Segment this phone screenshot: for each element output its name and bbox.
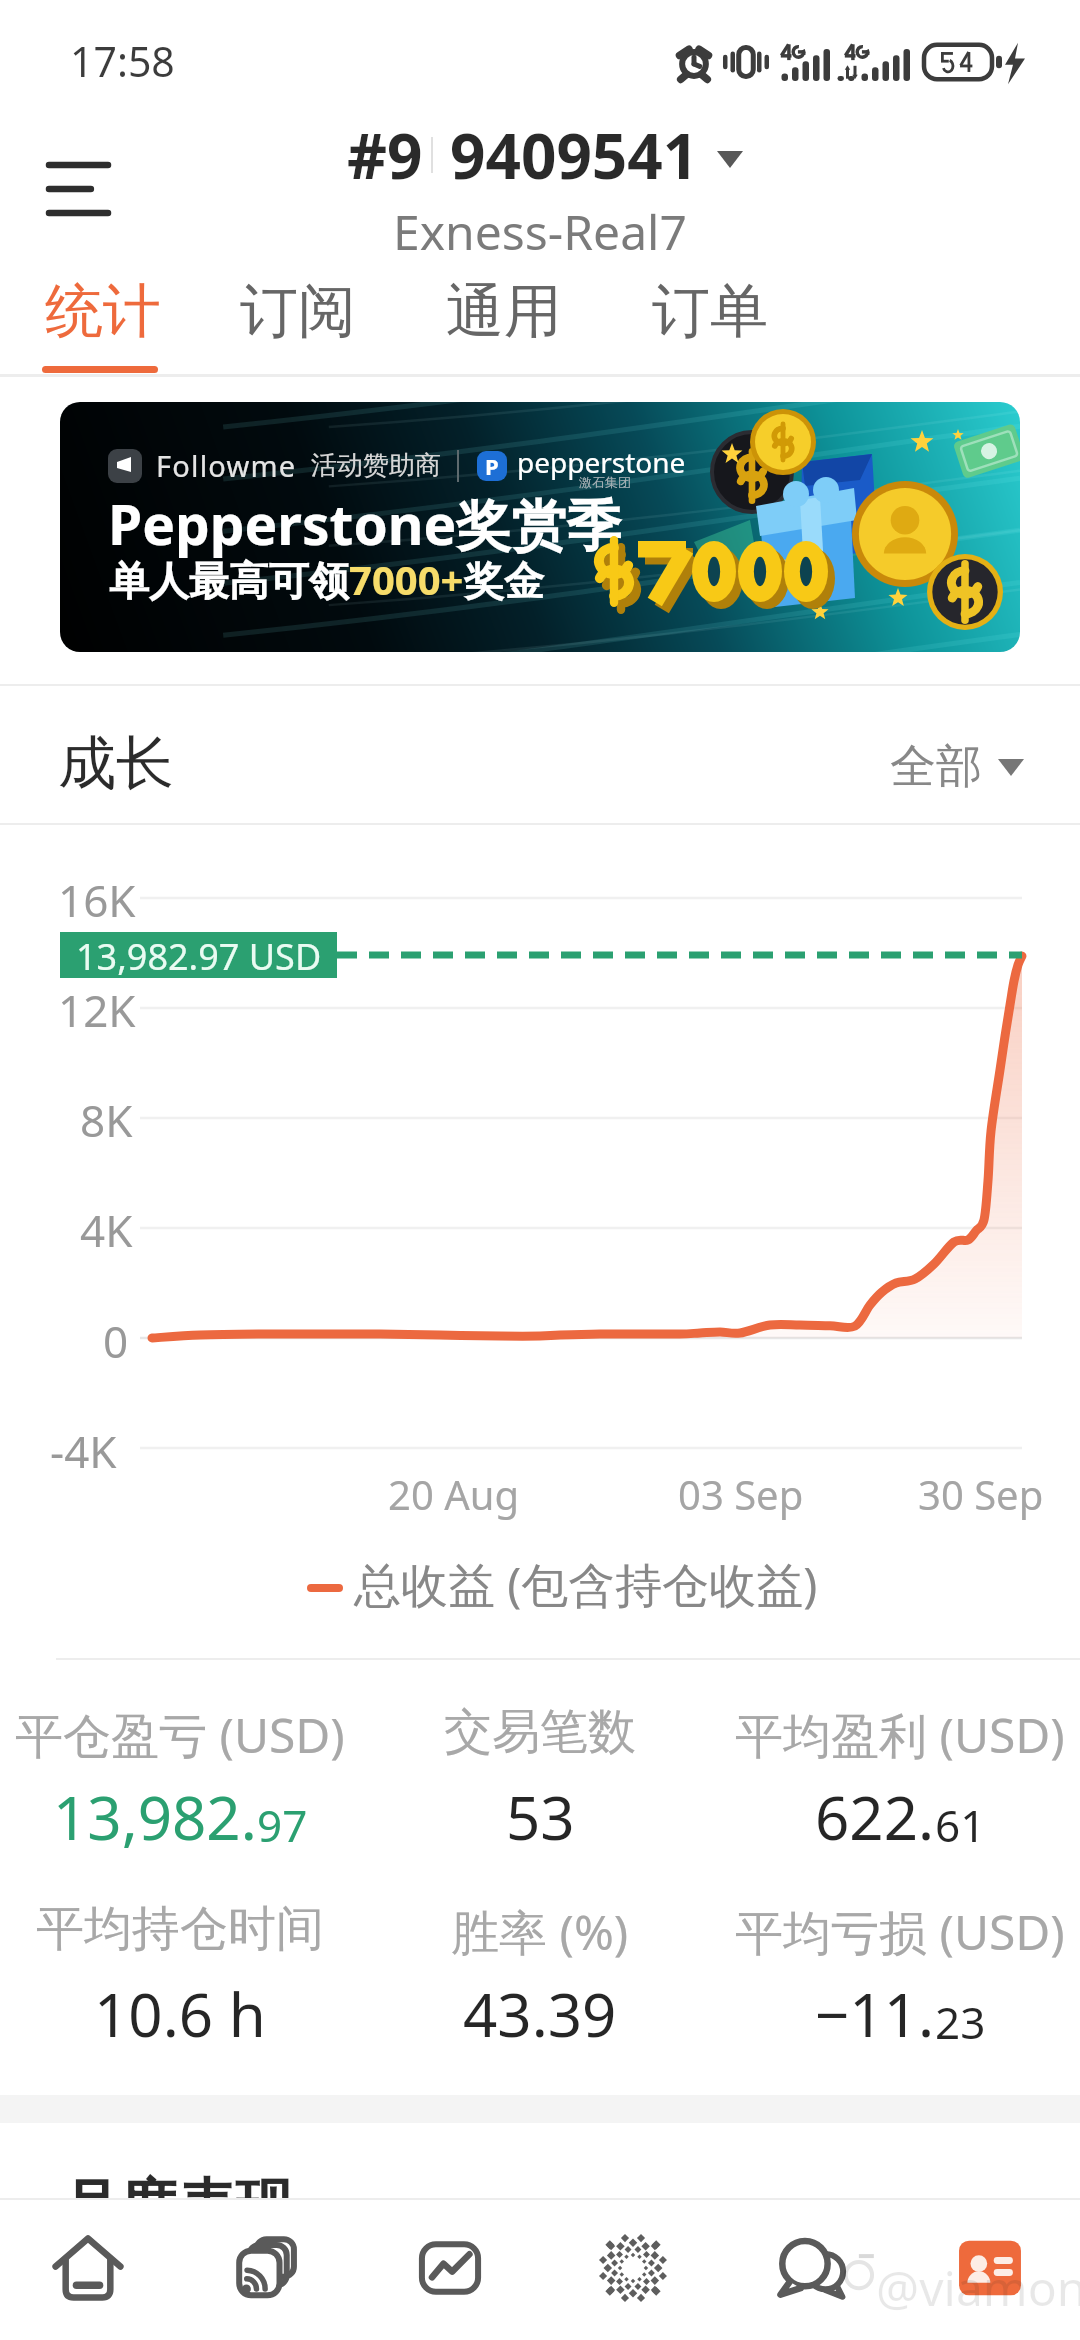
- staticText: 平仓盈亏 (USD): [15, 1702, 345, 1768]
- button[interactable]: Discover: [548, 2200, 718, 2340]
- staticText: 全部: [890, 738, 982, 796]
- button[interactable]: 统计: [37, 272, 169, 374]
- staticText: 97: [257, 1795, 308, 1855]
- button[interactable]: Analytics: [365, 2200, 535, 2340]
- staticText: 通用: [446, 275, 562, 348]
- button[interactable]: 订阅: [232, 272, 364, 374]
- staticText: 激石集团: [579, 474, 631, 490]
- staticText: 53: [506, 1776, 575, 1858]
- staticText: 30 Sep: [918, 1467, 1044, 1521]
- staticText: 奖金: [464, 556, 544, 606]
- staticText: pepperstone: [517, 443, 686, 481]
- button[interactable]: 订单: [644, 272, 776, 374]
- button[interactable]: 通用: [438, 272, 570, 374]
- staticText: 平均盈利 (USD): [735, 1702, 1065, 1768]
- staticText: 8K: [80, 1090, 133, 1150]
- staticText: 订单: [652, 275, 768, 348]
- staticText: 活动赞助商: [311, 449, 441, 482]
- staticText: 12K: [58, 980, 136, 1040]
- staticText: 交易笔数: [444, 1702, 636, 1762]
- staticText: Pepperstone奖赏季: [108, 486, 622, 561]
- staticText: 7000+: [349, 552, 464, 606]
- staticText: P: [485, 451, 499, 481]
- staticText: 平均亏损 (USD): [735, 1899, 1065, 1965]
- button[interactable]: Followme: [60, 402, 1020, 652]
- button[interactable]: Profile: [905, 2200, 1075, 2340]
- staticText: 17:58: [70, 33, 175, 89]
- staticText: #9: [347, 113, 423, 197]
- staticText: 622.: [815, 1776, 935, 1858]
- staticText: 13,982.: [53, 1776, 257, 1858]
- staticText: @viamond: [876, 2255, 1080, 2320]
- button[interactable]: #9: [347, 113, 743, 197]
- staticText: -4K: [50, 1421, 117, 1481]
- staticText: 03 Sep: [678, 1467, 804, 1521]
- staticText: 4K: [80, 1200, 133, 1260]
- staticText: 9409541: [450, 113, 699, 197]
- staticText: 统计: [45, 275, 161, 348]
- staticText: 10.6 h: [94, 1973, 266, 2055]
- staticText: −11.: [815, 1973, 935, 2055]
- staticText: 16K: [58, 870, 136, 930]
- staticText: 成长: [58, 727, 174, 800]
- staticText: 23: [935, 1992, 986, 2052]
- staticText: Followme: [156, 446, 297, 485]
- staticText: Exness-Real7: [393, 199, 687, 264]
- staticText: 总收益 (包含持仓收益): [354, 1552, 818, 1616]
- staticText: 月度表现: [61, 2170, 293, 2243]
- staticText: 61: [935, 1795, 986, 1855]
- staticText: 胜率 (%): [451, 1899, 629, 1965]
- staticText: 20 Aug: [388, 1467, 520, 1521]
- button[interactable]: 全部: [890, 738, 1024, 796]
- staticText: 0: [103, 1311, 129, 1371]
- button[interactable]: Messages: [725, 2200, 895, 2340]
- staticText: 订阅: [240, 275, 356, 348]
- button[interactable]: Feed: [183, 2200, 353, 2340]
- button[interactable]: Menu: [19, 136, 138, 236]
- button[interactable]: Home: [3, 2200, 173, 2340]
- staticText: 43.39: [463, 1973, 617, 2055]
- staticText: 平均持仓时间: [36, 1899, 324, 1959]
- staticText: 单人最高可领: [109, 556, 349, 606]
- staticText: 13,982.97 USD: [76, 932, 322, 978]
